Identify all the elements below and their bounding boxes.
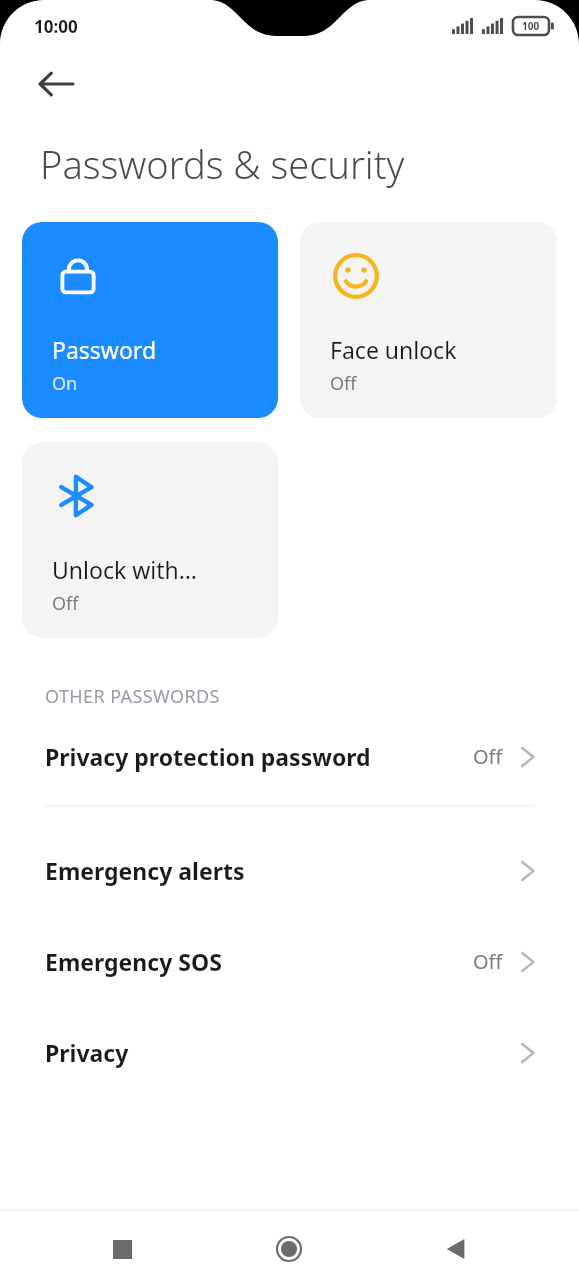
- staticText: Off: [52, 591, 79, 616]
- button[interactable]: Unlock with…: [22, 442, 278, 638]
- button[interactable]: Back: [426, 1219, 486, 1279]
- staticText: On: [52, 371, 78, 396]
- button[interactable]: Emergency SOS: [0, 946, 579, 977]
- button[interactable]: Privacy: [0, 1037, 579, 1068]
- button[interactable]: Emergency alerts: [0, 855, 579, 886]
- button[interactable]: Recent apps: [92, 1219, 152, 1279]
- button[interactable]: Home: [259, 1219, 319, 1279]
- staticText: Privacy protection password: [45, 741, 371, 772]
- staticText: Face unlock: [330, 334, 457, 365]
- staticText: Passwords & security: [40, 138, 405, 190]
- staticText: 100: [522, 19, 540, 33]
- button[interactable]: Privacy protection password: [0, 741, 579, 772]
- staticText: Off: [473, 743, 503, 770]
- staticText: OTHER PASSWORDS: [45, 684, 220, 709]
- button[interactable]: Password: [22, 222, 278, 418]
- staticText: Emergency SOS: [45, 946, 222, 977]
- button[interactable]: Face unlock: [300, 222, 557, 418]
- staticText: Privacy: [45, 1037, 129, 1068]
- staticText: 10:00: [34, 15, 78, 38]
- staticText: Password: [52, 334, 157, 365]
- button[interactable]: Back: [24, 52, 88, 116]
- staticText: Emergency alerts: [45, 855, 245, 886]
- staticText: Unlock with…: [52, 554, 197, 585]
- staticText: Off: [473, 948, 503, 975]
- staticText: Off: [330, 371, 357, 396]
